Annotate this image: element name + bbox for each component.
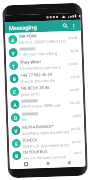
staticText: V bbox=[14, 128, 17, 134]
button[interactable]: A bbox=[7, 96, 84, 111]
staticText: NB BCDV 28 86 bbox=[21, 85, 50, 91]
button[interactable]: T bbox=[6, 57, 82, 72]
button[interactable]: Home bbox=[43, 159, 53, 168]
staticText: D bbox=[14, 115, 18, 121]
button[interactable]: D bbox=[8, 109, 84, 124]
button[interactable]: Search bbox=[61, 21, 70, 30]
staticText: Jun 03 bbox=[69, 62, 79, 66]
button[interactable]: C bbox=[7, 83, 83, 98]
staticText: Jul 05 bbox=[71, 49, 79, 53]
staticText: DO-IT-LL CREDIT CARD ST.ELL SYSTEM... bbox=[19, 38, 67, 45]
staticText: One cm. this cabs dra bbox=[21, 78, 56, 84]
staticText: MLM-ADVANCE* bbox=[22, 124, 54, 130]
staticText: Jul 03 bbox=[71, 75, 80, 79]
staticText: MR PONI bbox=[19, 33, 37, 39]
button[interactable]: B bbox=[6, 70, 83, 85]
button[interactable]: More options bbox=[70, 22, 78, 30]
staticText: Jun 04 bbox=[71, 127, 81, 131]
staticText: ICHECK bbox=[23, 137, 38, 143]
button[interactable]: B bbox=[9, 148, 85, 160]
staticText: press SCYC! bbox=[21, 91, 40, 97]
staticText: 6m3 Many ropas pra dint vhd feam, Framer… bbox=[22, 129, 70, 136]
button[interactable]: Back bbox=[64, 158, 74, 167]
button[interactable]: V bbox=[5, 44, 82, 59]
staticText: ID order lot ut a pin sho e bbox=[20, 64, 61, 71]
staticText: Ynn ust 100 nghts rent bab bbox=[23, 154, 66, 160]
staticText: Messaging bbox=[9, 23, 37, 31]
staticText: B bbox=[12, 76, 17, 82]
staticText: A bbox=[11, 37, 15, 43]
staticText: E bbox=[15, 141, 18, 147]
staticText: IN YOURBUS bbox=[23, 149, 48, 155]
staticText: code bbox=[53, 102, 62, 108]
staticText: B bbox=[15, 153, 19, 159]
staticText: A bbox=[13, 102, 18, 108]
staticText: V bbox=[12, 50, 15, 56]
staticText: IDO-PT, 21 thus tfweth Sechs hii-0Aradec… bbox=[23, 142, 71, 149]
button[interactable]: E bbox=[9, 135, 85, 150]
staticText: Jul 03 bbox=[73, 114, 81, 118]
button[interactable]: A bbox=[5, 31, 81, 46]
staticText: T bbox=[12, 63, 15, 69]
staticText: Jun 03 bbox=[68, 36, 78, 40]
staticText: Jun 03 bbox=[70, 101, 80, 105]
staticText: Go bbox=[22, 117, 27, 122]
staticText: 64914 is your bbox=[21, 103, 44, 109]
staticText: Jun 03 bbox=[72, 140, 82, 144]
staticText: 1.4%+ not+ -Bp+o-Ba+g bbox=[20, 50, 58, 57]
staticText: Jun 03 bbox=[70, 88, 80, 92]
staticText: They Wise! bbox=[20, 59, 41, 65]
staticText: +44 77 942 46 29 bbox=[20, 72, 53, 78]
staticText: C bbox=[13, 89, 16, 95]
button[interactable]: Recents bbox=[21, 160, 31, 169]
button[interactable]: V bbox=[8, 122, 85, 137]
staticText: Jan 4 bbox=[74, 151, 82, 155]
